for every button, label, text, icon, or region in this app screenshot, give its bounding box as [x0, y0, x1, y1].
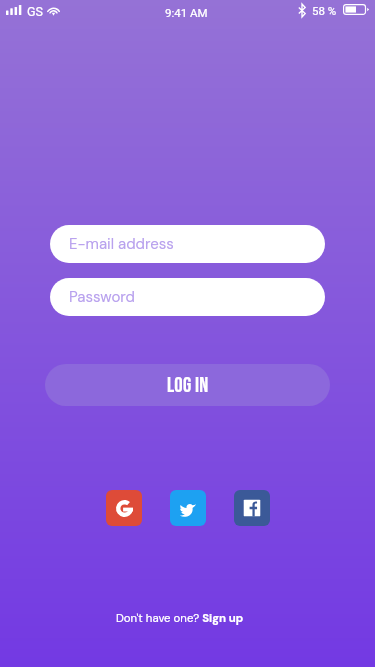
staticText: 58 % [312, 4, 337, 17]
button[interactable]: Sign in with Twitter [170, 490, 206, 526]
button[interactable]: E-mail address [50, 225, 325, 263]
button[interactable]: LOG IN [45, 364, 330, 406]
staticText: GS [27, 4, 43, 19]
staticText: 9:41 AM [165, 6, 208, 19]
staticText: LOG IN [167, 373, 209, 398]
button[interactable]: Don't have one? Sign up [110, 608, 250, 629]
button[interactable]: Sign in with Google [106, 490, 142, 526]
button[interactable]: Password [50, 278, 325, 316]
staticText: E-mail address [69, 234, 174, 254]
staticText: Password [69, 287, 136, 307]
button[interactable]: Sign in with Facebook [234, 490, 270, 526]
staticText: Don't have one? Sign up [116, 611, 244, 626]
